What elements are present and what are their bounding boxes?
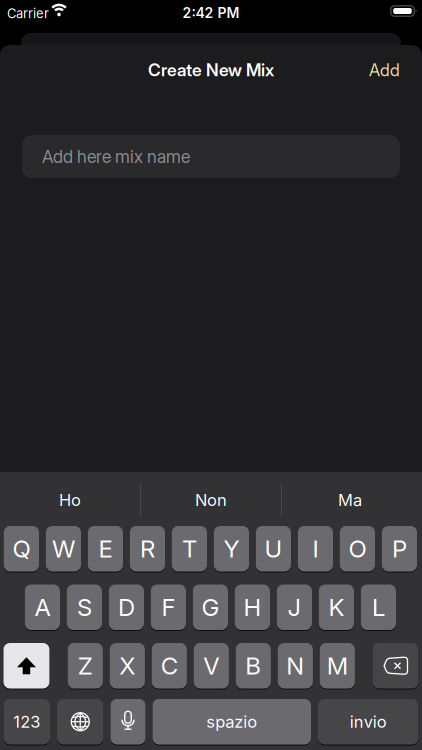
staticText: S — [77, 593, 92, 622]
staticText: Y — [223, 534, 239, 563]
staticText: Add here mix name — [42, 146, 190, 167]
staticText: C — [161, 651, 178, 680]
staticText: B — [245, 651, 261, 680]
staticText: W — [52, 534, 75, 563]
staticText: A — [34, 593, 50, 622]
staticText: O — [348, 534, 366, 563]
staticText: Add — [369, 60, 400, 80]
staticText: X — [119, 651, 135, 680]
staticText: D — [118, 593, 135, 622]
staticText: F — [161, 593, 175, 622]
staticText: spazio — [206, 712, 257, 732]
staticText: U — [264, 534, 282, 563]
staticText: L — [372, 593, 385, 622]
staticText: P — [392, 534, 407, 563]
staticText: J — [287, 593, 301, 622]
staticText: 123 — [13, 712, 40, 732]
staticText: Ma — [338, 490, 362, 510]
staticText: Ho — [59, 490, 81, 510]
staticText: G — [201, 593, 219, 622]
staticText: Create New Mix — [148, 59, 274, 80]
staticText: N — [286, 651, 304, 680]
staticText: Non — [195, 490, 227, 510]
staticText: H — [243, 593, 261, 622]
staticText: R — [140, 534, 155, 563]
staticText: Z — [78, 651, 93, 680]
staticText: T — [182, 534, 197, 563]
staticText: K — [328, 593, 344, 622]
staticText: I — [312, 534, 318, 563]
staticText: E — [98, 534, 112, 563]
staticText: V — [203, 651, 219, 680]
staticText: Q — [12, 534, 30, 563]
staticText: Carrier — [7, 6, 49, 21]
staticText: M — [327, 651, 348, 680]
staticText: 2:42 PM — [182, 4, 239, 21]
staticText: invio — [350, 712, 387, 732]
